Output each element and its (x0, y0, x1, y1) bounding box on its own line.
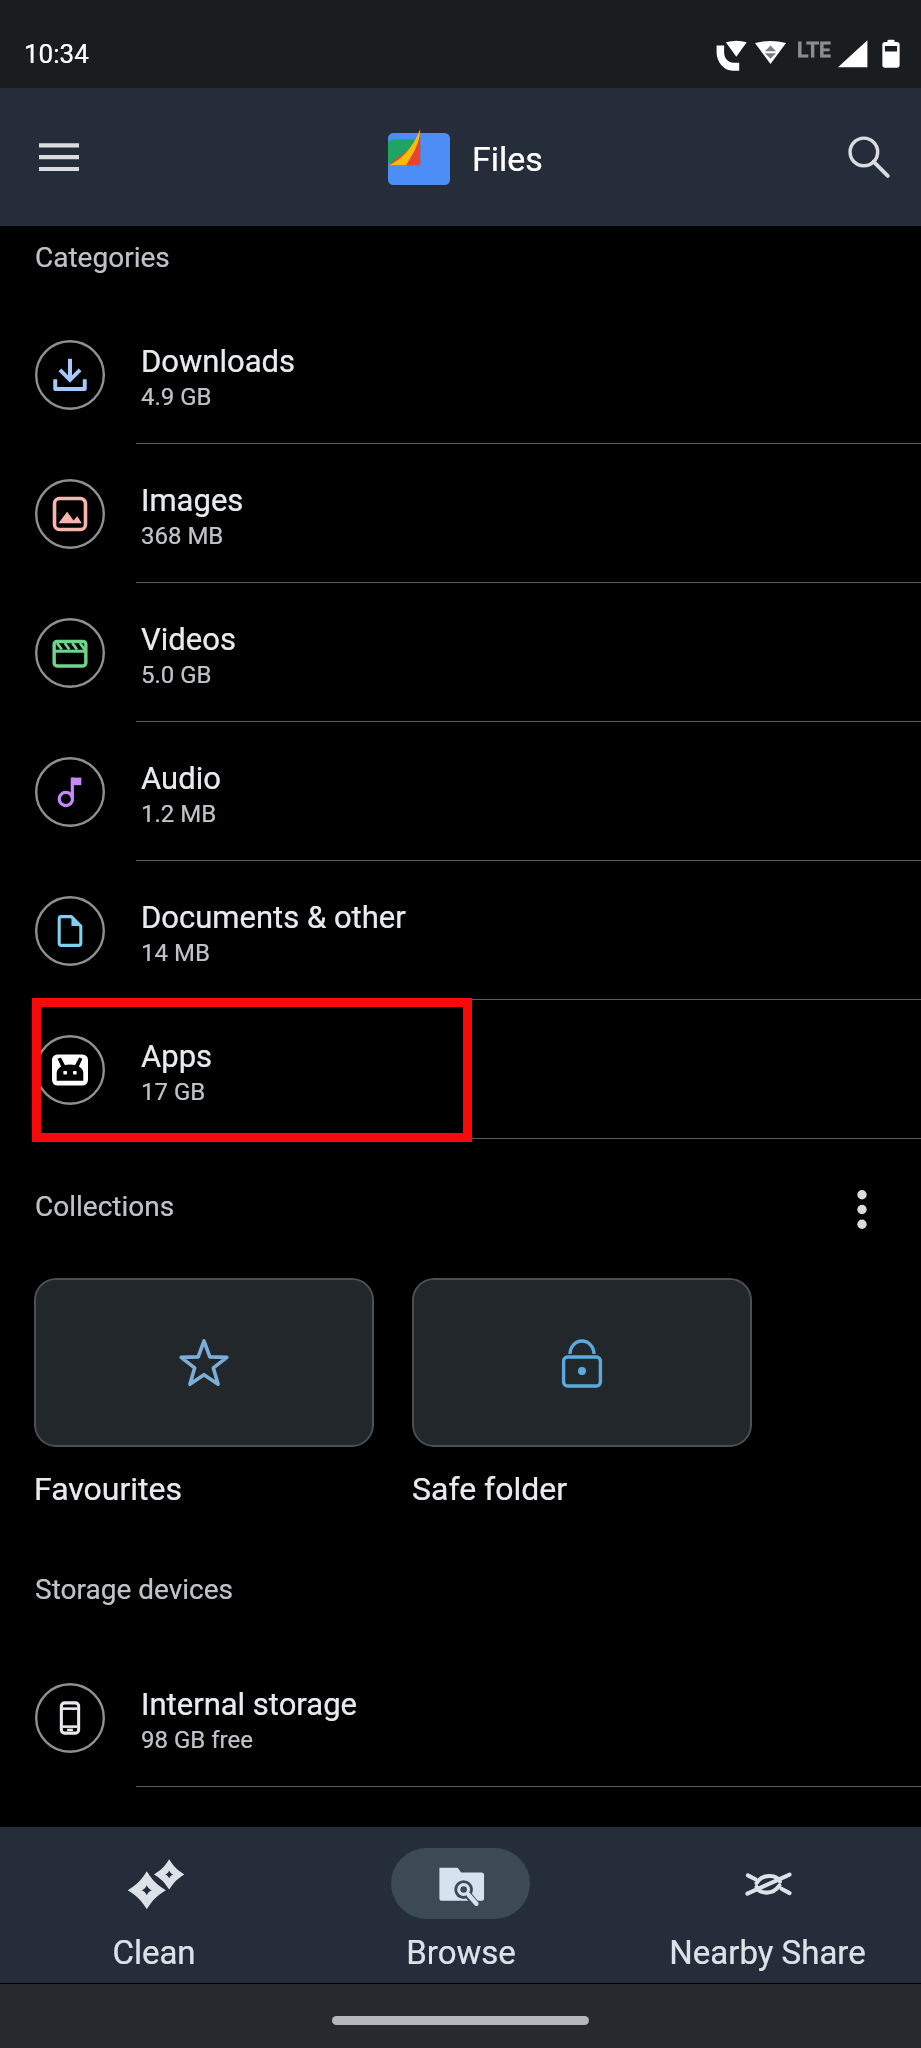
staticText: Favourites (34, 1470, 183, 1508)
button[interactable]: Audio (0, 722, 921, 861)
staticText: Internal storage (141, 1686, 357, 1722)
staticText: Files (472, 139, 543, 179)
button[interactable]: Favourites (34, 1278, 374, 1447)
staticText: Images (141, 482, 244, 518)
button[interactable]: Documents & other (0, 861, 921, 1000)
staticText: 1.2 MB (141, 800, 217, 828)
button[interactable]: Nearby Share (614, 1848, 921, 1972)
staticText: Browse (406, 1933, 516, 1972)
button[interactable]: More options (834, 1181, 890, 1237)
button[interactable]: Internal storage (0, 1648, 921, 1787)
staticText: Nearby Share (669, 1933, 866, 1972)
staticText: Audio (141, 760, 221, 796)
button[interactable]: Videos (0, 583, 921, 722)
staticText: 5.0 GB (141, 661, 212, 689)
staticText: Apps (141, 1038, 213, 1074)
staticText: Downloads (141, 343, 296, 379)
button[interactable]: Safe folder (412, 1278, 752, 1447)
staticText: 98 GB free (141, 1726, 253, 1754)
staticText: 14 MB (141, 939, 210, 967)
button[interactable]: Browse (307, 1848, 614, 1972)
staticText: Safe folder (412, 1470, 568, 1508)
staticText: 368 MB (141, 522, 224, 550)
staticText: Documents & other (141, 899, 406, 935)
button[interactable]: Search (831, 120, 905, 194)
button[interactable]: Clean (0, 1848, 307, 1972)
staticText: Clean (112, 1933, 196, 1972)
button[interactable]: Open navigation menu (22, 120, 96, 194)
staticText: LTE (797, 38, 831, 63)
staticText: 10:34 (24, 39, 89, 69)
staticText: Categories (35, 241, 170, 274)
staticText: 4.9 GB (141, 383, 212, 411)
staticText: Videos (141, 621, 236, 657)
staticText: Storage devices (35, 1573, 233, 1606)
button[interactable]: Downloads (0, 305, 921, 444)
button[interactable]: Images (0, 444, 921, 583)
staticText: 17 GB (141, 1078, 206, 1106)
button[interactable]: Apps (0, 1000, 921, 1139)
staticText: Collections (35, 1190, 175, 1223)
